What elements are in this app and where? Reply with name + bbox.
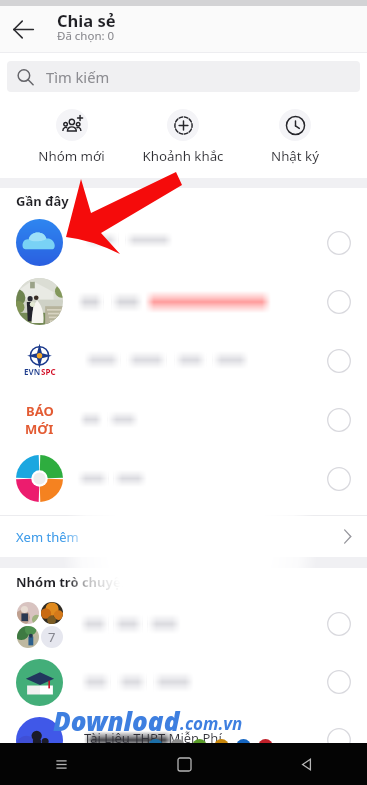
staticText: Download xyxy=(53,703,180,738)
staticText: Nhóm mới xyxy=(38,147,105,165)
button[interactable]: Nhật ký xyxy=(239,97,351,165)
button[interactable] xyxy=(0,272,367,331)
button[interactable]: Tìm kiếm xyxy=(7,61,360,92)
staticText: EVN xyxy=(24,366,41,377)
staticText: Chia sẻ xyxy=(57,9,116,31)
button[interactable]: Back xyxy=(0,6,47,53)
button[interactable]: Xem thêm xyxy=(0,516,367,557)
staticText: .com.vn xyxy=(180,712,243,735)
button[interactable] xyxy=(0,449,367,508)
staticText: Khoảnh khắc xyxy=(142,147,224,165)
staticText: Xem thêm xyxy=(16,528,79,546)
button[interactable]: Khoảnh khắc xyxy=(127,97,239,165)
button[interactable]: EVN xyxy=(0,331,367,390)
staticText: MỚI xyxy=(25,420,54,438)
staticText: Đã chọn: 0 xyxy=(57,28,115,44)
staticText: SPC xyxy=(41,366,56,377)
button[interactable]: Nhóm mới xyxy=(16,97,127,165)
staticText: Tìm kiếm xyxy=(46,67,110,87)
button[interactable]: Back xyxy=(245,743,367,785)
staticText: Gần đây xyxy=(16,192,69,210)
staticText: Nhóm trò chuyện xyxy=(16,573,130,591)
button[interactable]: BÁO xyxy=(0,390,367,449)
staticText: Tài Liệu THPT Miễn Phí xyxy=(84,729,222,747)
button[interactable]: 7 xyxy=(0,595,367,653)
staticText: Nhật ký xyxy=(271,147,319,165)
button[interactable] xyxy=(0,213,367,272)
staticText: 7 xyxy=(48,628,56,646)
button[interactable] xyxy=(0,653,367,711)
staticText: BÁO xyxy=(26,402,54,420)
button[interactable]: Home xyxy=(123,743,245,785)
button[interactable] xyxy=(0,711,367,769)
button[interactable]: Recent apps xyxy=(0,743,123,785)
